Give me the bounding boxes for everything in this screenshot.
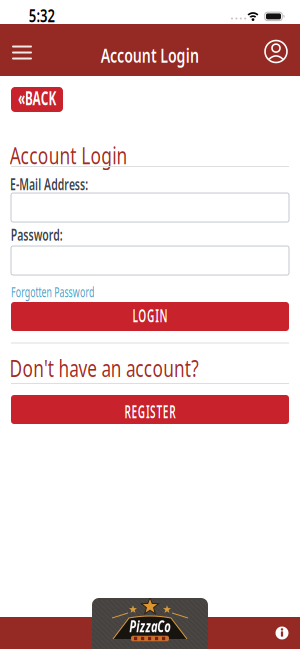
button[interactable]: Info (273, 624, 291, 642)
button[interactable]: Forgotten Password (0, 282, 122, 301)
button[interactable]: PizzaCo (92, 598, 208, 649)
staticText: E-Mail Address: (0, 173, 108, 195)
staticText: «BACK (7, 86, 67, 110)
staticText: Forgotten Password (0, 282, 122, 301)
staticText: Don't have an account? (0, 352, 235, 384)
staticText: Password: (0, 224, 76, 245)
staticText: REGISTER (106, 400, 194, 423)
button[interactable]: Account (265, 40, 287, 62)
staticText: PizzaCo (120, 615, 179, 637)
staticText: 5:32 (23, 3, 61, 27)
staticText: Account Login (0, 139, 150, 171)
button[interactable]: Menu (5, 35, 39, 69)
staticText: Account Login (80, 42, 219, 68)
staticText: LOGIN (120, 304, 180, 327)
button[interactable]: REGISTER (11, 395, 289, 424)
button[interactable]: «BACK (11, 87, 63, 112)
button[interactable]: LOGIN (11, 302, 289, 331)
